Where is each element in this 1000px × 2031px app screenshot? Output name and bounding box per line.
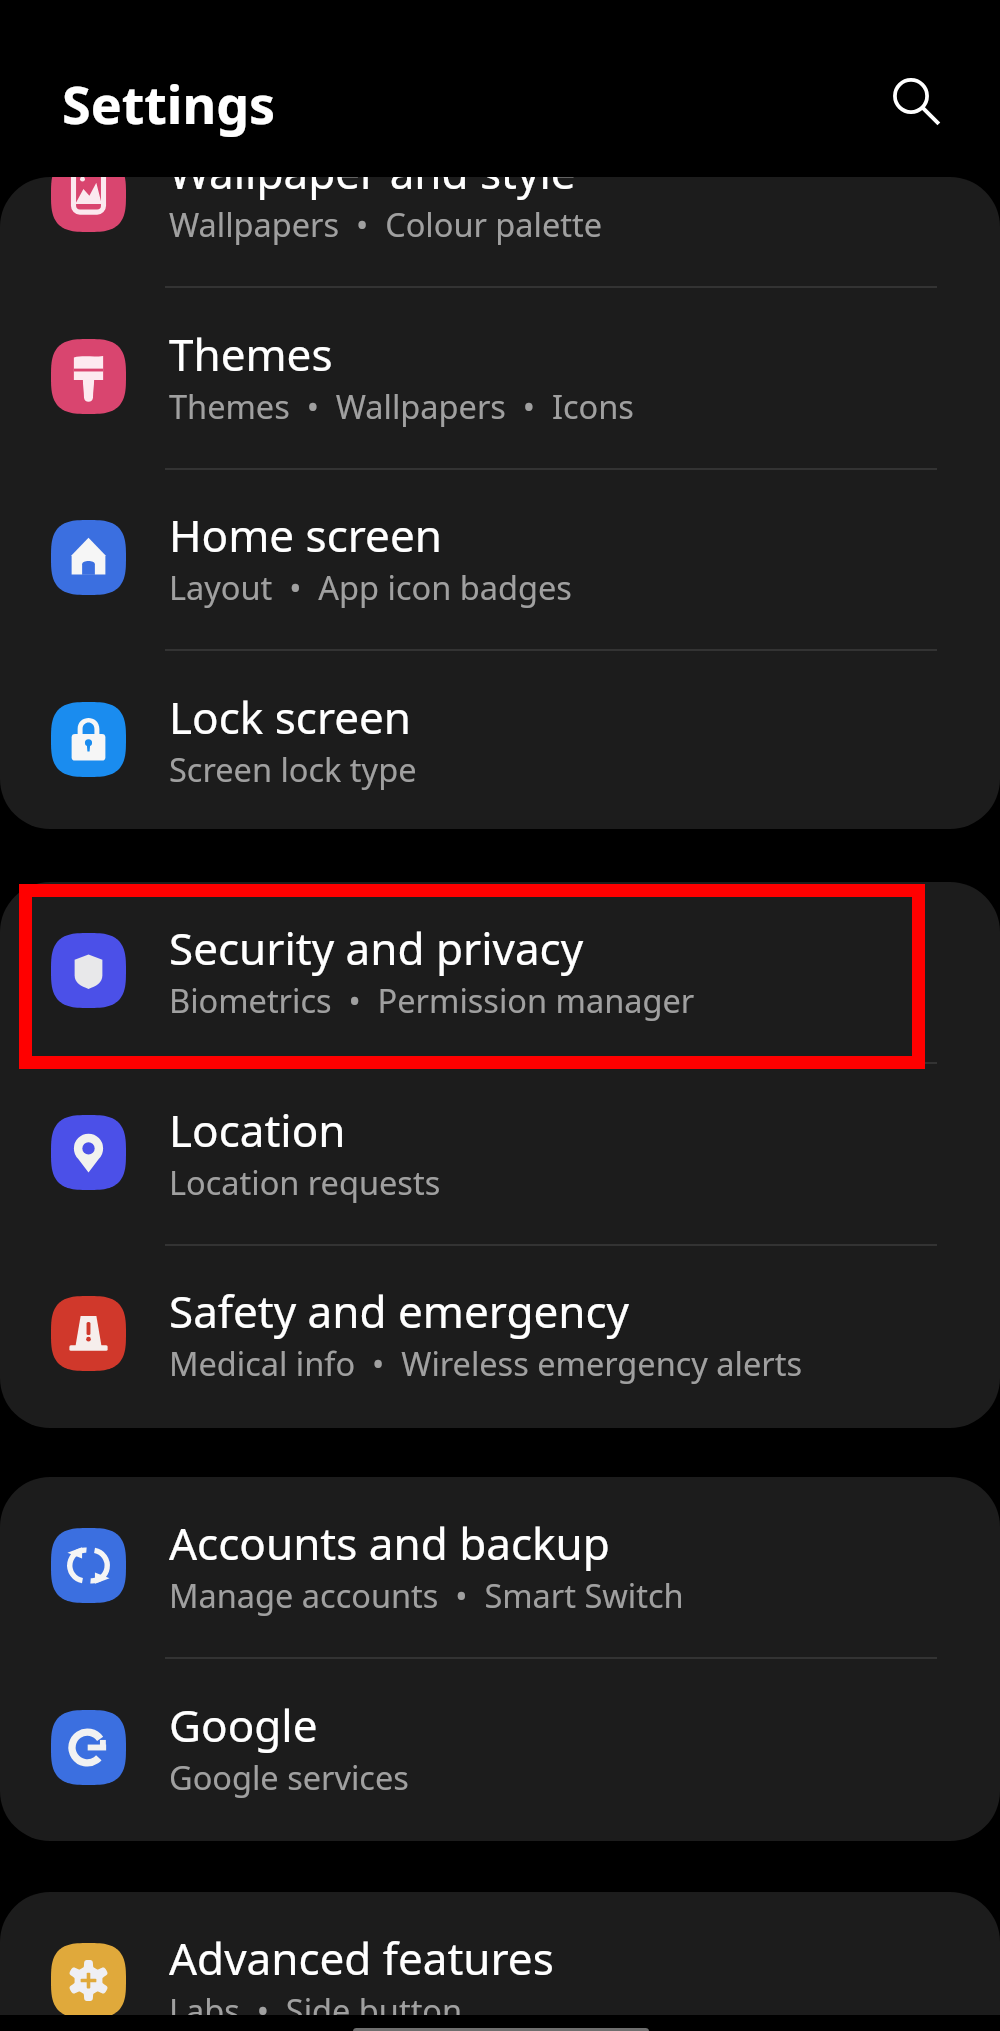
button[interactable]: Location — [0, 1064, 1000, 1246]
staticText: Manage accounts • Smart Switch — [169, 1573, 684, 1617]
staticText: Themes • Wallpapers • Icons — [169, 384, 634, 428]
staticText: Google — [169, 1695, 318, 1755]
button[interactable]: Home screen — [0, 469, 1000, 651]
staticText: Security and privacy — [169, 918, 584, 978]
staticText: Location — [169, 1100, 346, 1160]
button[interactable]: Safety and emergency — [0, 1245, 1000, 1427]
staticText: Safety and emergency — [169, 1281, 630, 1341]
staticText: Settings — [62, 68, 276, 139]
staticText: Home screen — [169, 505, 442, 565]
staticText: Accounts and backup — [169, 1513, 610, 1573]
staticText: Wallpapers • Colour palette — [169, 202, 603, 246]
staticText: Biometrics • Permission manager — [169, 978, 695, 1022]
staticText: Lock screen — [169, 687, 412, 747]
button[interactable]: Google — [0, 1659, 1000, 1841]
staticText: Google services — [169, 1755, 409, 1799]
button[interactable]: Security and privacy — [0, 882, 1000, 1064]
staticText: Themes — [169, 324, 333, 384]
staticText: Labs • Side button — [169, 1988, 463, 2031]
button[interactable]: Advanced features — [0, 1892, 1000, 2031]
staticText: Wallpaper and style — [169, 177, 576, 202]
staticText: Location requests — [169, 1160, 441, 1204]
button[interactable]: Search — [869, 54, 965, 150]
staticText: Layout • App icon badges — [169, 565, 572, 609]
staticText: Screen lock type — [169, 747, 417, 791]
button[interactable]: Themes — [0, 288, 1000, 470]
button[interactable]: Accounts and backup — [0, 1477, 1000, 1659]
staticText: Advanced features — [169, 1928, 554, 1988]
button[interactable]: Wallpaper and style — [0, 177, 1000, 288]
staticText: Medical info • Wireless emergency alerts — [169, 1341, 803, 1385]
button[interactable]: Lock screen — [0, 651, 1000, 829]
